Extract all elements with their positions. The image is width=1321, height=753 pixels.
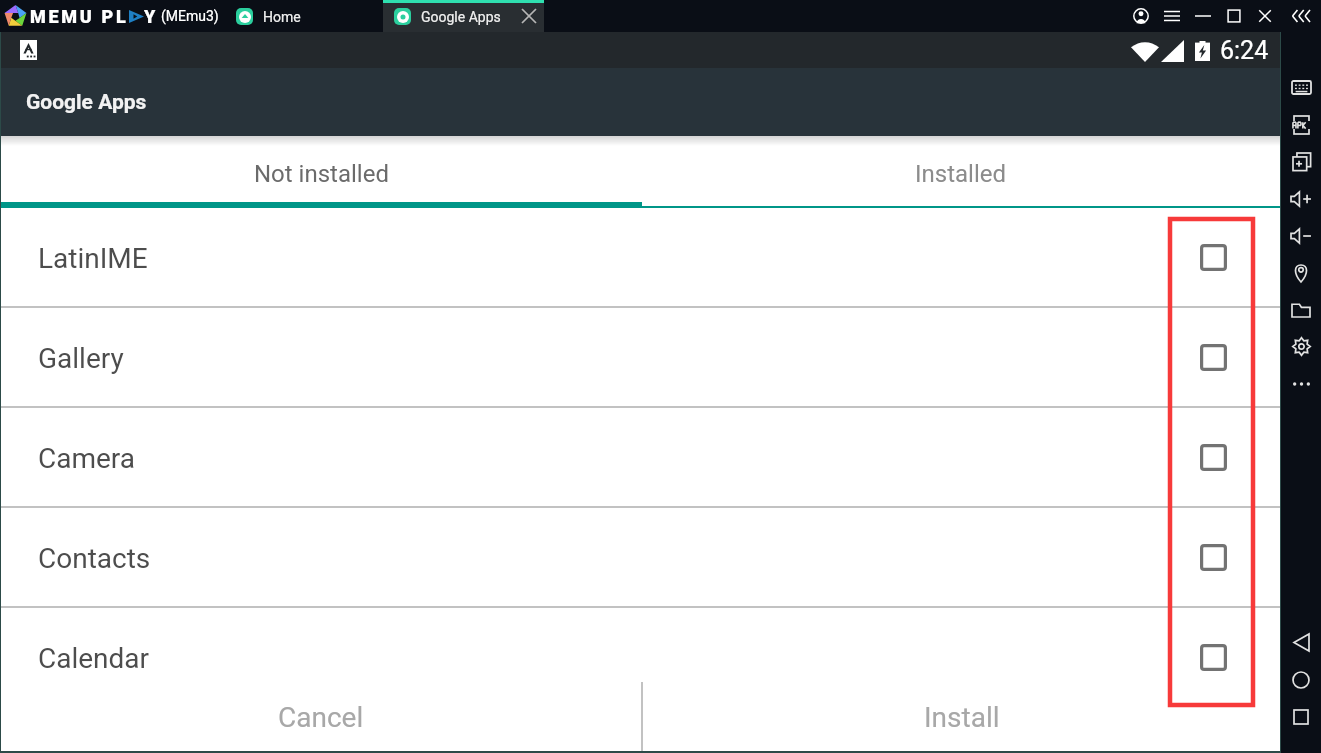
staticText: MEMU PL	[30, 6, 129, 27]
button[interactable]: Calendar	[1, 608, 1280, 708]
staticText: Gallery	[38, 342, 124, 375]
staticText: Installed	[915, 160, 1007, 188]
button[interactable]: Select LatinIME	[1200, 244, 1227, 271]
button[interactable]: Select Calendar	[1200, 644, 1227, 671]
button[interactable]: Menu	[1156, 0, 1187, 32]
button[interactable]: Home	[1281, 661, 1321, 698]
staticText: Google Apps	[421, 9, 501, 25]
button[interactable]: Select Camera	[1200, 444, 1227, 471]
button[interactable]: Shared folder	[1281, 291, 1321, 328]
button[interactable]: Google Apps	[383, 0, 544, 32]
button[interactable]: Back	[1281, 624, 1321, 661]
staticText: Contacts	[38, 542, 151, 575]
button[interactable]: Install	[643, 682, 1280, 751]
button[interactable]: Minimize	[1187, 0, 1218, 32]
button[interactable]: Recents	[1281, 698, 1321, 735]
button[interactable]: Installed	[641, 138, 1280, 210]
staticText: Calendar	[38, 642, 150, 675]
button[interactable]: Camera	[1, 408, 1280, 508]
button[interactable]: Keyboard	[1281, 69, 1321, 106]
button[interactable]: Cancel	[1, 682, 641, 751]
staticText: Not installed	[254, 160, 389, 188]
button[interactable]: Select Gallery	[1200, 344, 1227, 371]
button[interactable]: Maximize	[1218, 0, 1249, 32]
button[interactable]: LatinIME	[1, 208, 1280, 308]
button[interactable]: Volume down	[1281, 217, 1321, 254]
button[interactable]: Collapse sidebar	[1280, 0, 1321, 32]
staticText: Install	[924, 701, 1000, 734]
button[interactable]: Home	[228, 0, 383, 32]
staticText: Home	[263, 9, 301, 25]
staticText: Google Apps	[26, 90, 147, 115]
button[interactable]: Location	[1281, 254, 1321, 291]
staticText: 6:24	[1220, 36, 1269, 65]
staticText: (MEmu3)	[161, 8, 219, 24]
staticText: Y	[144, 6, 157, 27]
button[interactable]: Volume up	[1281, 180, 1321, 217]
button[interactable]: Not installed	[1, 138, 641, 210]
button[interactable]: Close tab	[518, 5, 540, 27]
staticText: Camera	[38, 442, 136, 475]
button[interactable]: Install APK	[1281, 106, 1321, 143]
button[interactable]: Multi instance	[1281, 143, 1321, 180]
button[interactable]: Contacts	[1, 508, 1280, 608]
button[interactable]: Account	[1125, 0, 1156, 32]
staticText: Cancel	[278, 701, 364, 734]
staticText: LatinIME	[38, 242, 148, 275]
button[interactable]: Select Contacts	[1200, 544, 1227, 571]
button[interactable]: More	[1281, 365, 1321, 402]
button[interactable]: Settings	[1281, 328, 1321, 365]
button[interactable]: Gallery	[1, 308, 1280, 408]
button[interactable]: Close	[1249, 0, 1280, 32]
